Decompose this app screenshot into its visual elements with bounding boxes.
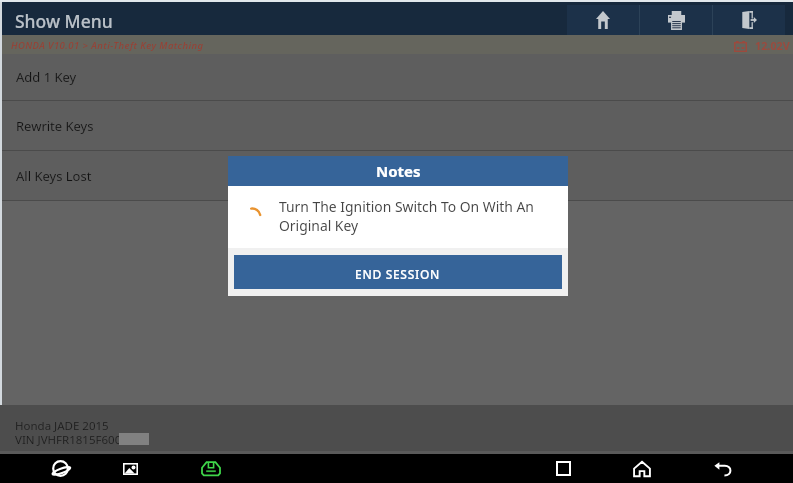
staticText: Turn The Ignition Switch To On With An O… [279,197,561,235]
staticText: END SESSION [355,266,441,282]
button[interactable]: END SESSION [234,255,562,289]
button[interactable]: Home [626,454,658,483]
staticText: Notes [376,161,421,181]
button[interactable]: Back [707,454,739,483]
staticText: All Keys Lost [16,167,92,185]
staticText: Rewrite Keys [16,117,94,135]
staticText: Show Menu [15,9,113,33]
staticText: Add 1 Key [16,68,77,86]
button[interactable]: Recents [547,454,579,483]
button[interactable]: Rewrite Keys [0,101,793,151]
button[interactable]: Home [567,5,639,35]
staticText: HONDA V10.01 > Anti-Theft Key Matching [11,39,204,52]
button[interactable]: Browser [44,454,76,483]
staticText: 12.02V [755,38,790,53]
button[interactable]: Print [640,5,712,35]
button[interactable]: Gallery [114,454,146,483]
staticText: Honda JADE 2015 [15,418,109,434]
button[interactable]: All Keys Lost [0,151,793,201]
button[interactable]: Add 1 Key [0,54,793,101]
button[interactable]: Vehicle diagnostics [195,454,227,483]
staticText: VIN JVHFR1815F600 [15,432,122,448]
button[interactable]: Exit [713,5,785,35]
